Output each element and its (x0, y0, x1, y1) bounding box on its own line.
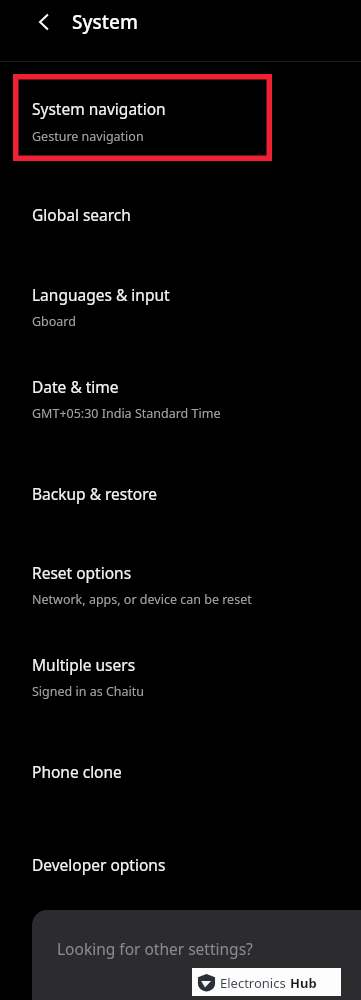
staticText: Multiple users (32, 654, 136, 675)
button[interactable] (0, 458, 361, 528)
button[interactable] (0, 632, 361, 712)
staticText: Global search (32, 204, 131, 225)
button[interactable]: Looking for other settings? (32, 910, 361, 1000)
staticText: Looking for other settings? (57, 938, 253, 959)
button[interactable]: Back (26, 4, 62, 40)
staticText: Network, apps, or device can be reset (32, 591, 252, 608)
button[interactable] (0, 540, 361, 620)
staticText: Electronics (220, 974, 290, 992)
button[interactable] (0, 76, 361, 158)
button[interactable] (0, 736, 361, 806)
button[interactable] (0, 178, 361, 248)
staticText: System (72, 9, 138, 35)
staticText: Signed in as Chaitu (32, 683, 145, 700)
staticText: Gboard (32, 313, 76, 330)
staticText: GMT+05:30 India Standard Time (32, 405, 221, 422)
staticText: Backup & restore (32, 483, 158, 504)
staticText: Languages & input (32, 284, 170, 305)
button[interactable] (0, 354, 361, 434)
staticText: Reset options (32, 562, 132, 583)
staticText: Hub (290, 974, 317, 992)
staticText: System navigation (32, 98, 166, 119)
button[interactable] (0, 262, 361, 342)
staticText: Developer options (32, 854, 166, 875)
staticText: Gesture navigation (32, 128, 144, 145)
staticText: Phone clone (32, 761, 122, 782)
button[interactable] (0, 828, 361, 898)
staticText: Date & time (32, 376, 119, 397)
